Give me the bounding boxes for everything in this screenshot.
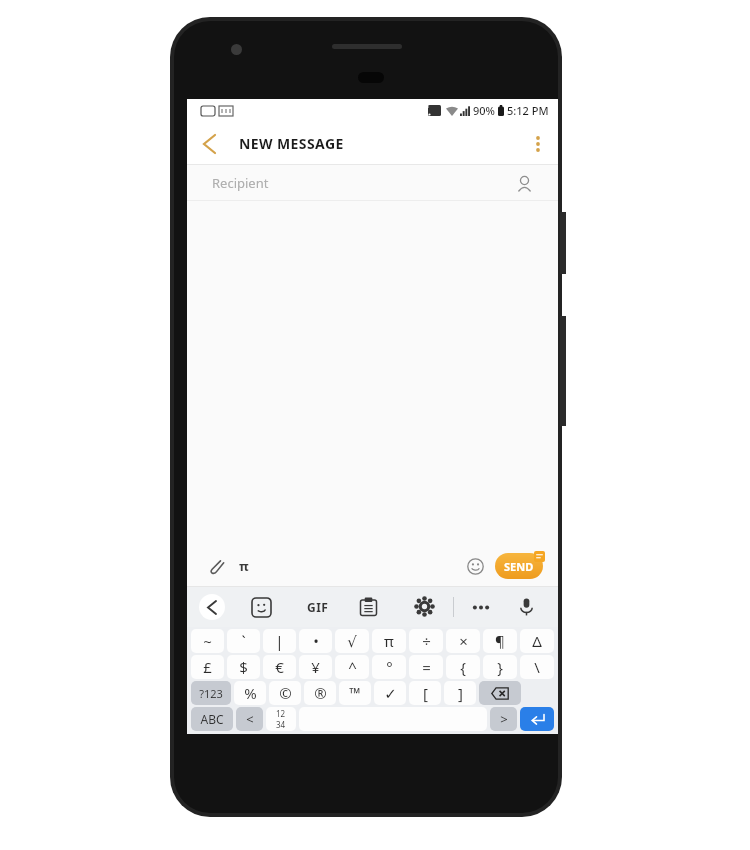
staticText: ® — [314, 683, 327, 703]
button[interactable]: Add contact — [512, 171, 536, 195]
button[interactable]: Emoji — [462, 553, 488, 579]
button[interactable]: Attach — [201, 545, 231, 587]
button[interactable]: Collapse toolbar — [199, 594, 225, 620]
button[interactable]: € — [263, 655, 296, 679]
button[interactable]: ✓ — [374, 681, 406, 705]
button[interactable]: ?123 — [191, 681, 231, 705]
button[interactable]: • — [299, 629, 332, 653]
staticText: ¥ — [311, 657, 320, 677]
staticText: | — [275, 631, 284, 651]
button[interactable]: | — [263, 629, 296, 653]
button[interactable]: Voice input — [517, 597, 536, 616]
staticText: [ — [423, 683, 428, 703]
staticText: % — [244, 683, 257, 703]
button[interactable]: ÷ — [409, 629, 443, 653]
staticText: © — [279, 683, 292, 703]
staticText: ÷ — [422, 631, 431, 651]
button[interactable]: Enter — [520, 707, 554, 731]
staticText: ABC — [200, 711, 224, 727]
staticText: ` — [241, 631, 246, 651]
button[interactable]: Keyboard settings — [415, 597, 434, 616]
staticText: • — [313, 631, 319, 651]
staticText: \ — [534, 657, 540, 677]
staticText: 34 — [276, 719, 286, 730]
button[interactable]: √ — [335, 629, 369, 653]
button[interactable]: Clipboard — [359, 597, 378, 616]
button[interactable]: Text style — [231, 545, 257, 587]
staticText: Recipient — [212, 174, 269, 192]
staticText: ° — [386, 657, 393, 677]
button[interactable]: £ — [191, 655, 224, 679]
staticText: GIF — [307, 599, 329, 615]
button[interactable]: { — [446, 655, 480, 679]
staticText: ✓ — [384, 685, 397, 702]
button[interactable]: ~ — [191, 629, 224, 653]
button[interactable]: = — [409, 655, 443, 679]
staticText: } — [497, 657, 503, 677]
button[interactable]: SEND — [495, 553, 543, 579]
staticText: € — [275, 657, 284, 677]
staticText: ?123 — [199, 686, 223, 701]
staticText: $ — [239, 657, 248, 677]
button[interactable]: ® — [304, 681, 336, 705]
staticText: ¶ — [495, 631, 505, 651]
button[interactable]: Backspace — [479, 681, 521, 705]
button[interactable]: > — [490, 707, 517, 731]
button[interactable]: ™ — [339, 681, 371, 705]
button[interactable]: × — [446, 629, 480, 653]
staticText: < — [246, 710, 254, 728]
staticText: √ — [347, 633, 357, 650]
staticText: 90% — [473, 103, 495, 118]
staticText: 5:12 PM — [507, 103, 549, 118]
button[interactable]: More — [470, 599, 492, 615]
staticText: > — [500, 710, 508, 728]
staticText: = — [422, 657, 431, 677]
button[interactable]: Stickers — [252, 598, 271, 617]
button[interactable]: Recipient — [187, 165, 558, 201]
button[interactable]: GIF — [303, 597, 333, 617]
button[interactable]: ^ — [335, 655, 369, 679]
button[interactable]: More options — [518, 122, 558, 165]
button[interactable]: $ — [227, 655, 260, 679]
button[interactable]: ¶ — [483, 629, 517, 653]
staticText: ^ — [348, 657, 357, 677]
button[interactable]: ` — [227, 629, 260, 653]
button[interactable]: π — [372, 629, 406, 653]
button[interactable]: ° — [372, 655, 406, 679]
staticText: Δ — [532, 631, 542, 651]
button[interactable]: \ — [520, 655, 554, 679]
button[interactable]: 12 — [266, 707, 296, 731]
staticText: 12 — [276, 708, 286, 719]
button[interactable]: ABC — [191, 707, 233, 731]
button[interactable]: < — [236, 707, 263, 731]
button[interactable]: ¥ — [299, 655, 332, 679]
staticText: ] — [458, 683, 463, 703]
button[interactable]: ] — [444, 681, 476, 705]
button[interactable]: % — [234, 681, 266, 705]
button[interactable]: } — [483, 655, 517, 679]
button[interactable]: [ — [409, 681, 441, 705]
staticText: { — [460, 657, 466, 677]
staticText: ~ — [203, 631, 212, 651]
staticText: π — [384, 631, 394, 651]
staticText: £ — [203, 657, 212, 677]
staticText: × — [459, 631, 468, 651]
button[interactable]: Δ — [520, 629, 554, 653]
staticText: SEND — [504, 559, 534, 574]
staticText: π — [239, 557, 249, 575]
staticText: NEW MESSAGE — [239, 134, 344, 153]
button[interactable]: Back — [187, 122, 231, 165]
button[interactable]: © — [269, 681, 301, 705]
staticText: ™ — [349, 683, 361, 703]
